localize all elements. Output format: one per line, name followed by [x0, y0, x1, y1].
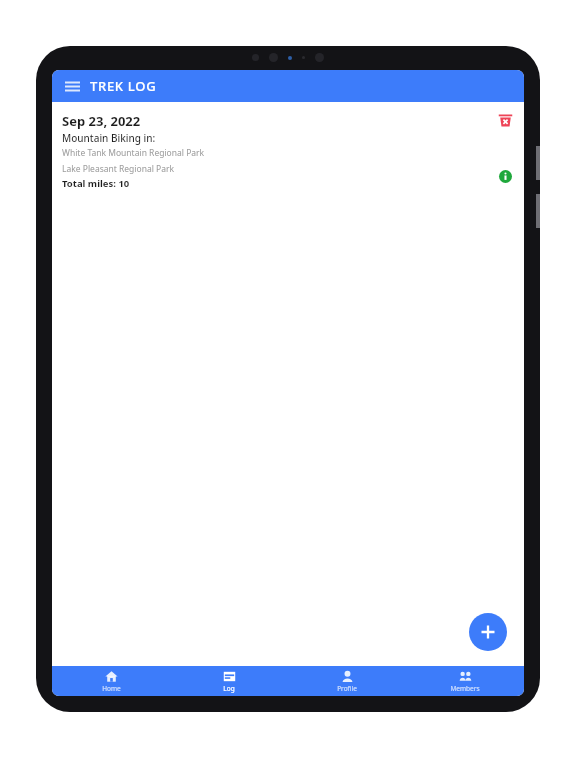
button[interactable]: More information — [496, 167, 514, 185]
button[interactable]: Delete entry — [496, 111, 514, 129]
button[interactable]: Add new log entry — [469, 613, 507, 651]
staticText: White Tank Mountain Regional Park — [62, 147, 205, 159]
staticText: Members — [450, 684, 480, 693]
staticText: Profile — [337, 684, 357, 693]
button[interactable]: Home — [52, 666, 170, 696]
button[interactable]: Open navigation menu — [59, 73, 85, 99]
button[interactable]: Log — [170, 666, 288, 696]
button[interactable]: Sep 23, 2022 — [52, 106, 524, 190]
staticText: Total miles: 10 — [62, 177, 130, 190]
staticText: Home — [102, 684, 121, 693]
button[interactable]: Members — [406, 666, 524, 696]
staticText: Sep 23, 2022 — [62, 112, 141, 130]
staticText: TREK LOG — [90, 77, 157, 95]
staticText: Mountain Biking in: — [62, 131, 156, 145]
staticText: Log — [223, 684, 235, 693]
staticText: Lake Pleasant Regional Park — [62, 163, 175, 175]
button[interactable]: Profile — [288, 666, 406, 696]
